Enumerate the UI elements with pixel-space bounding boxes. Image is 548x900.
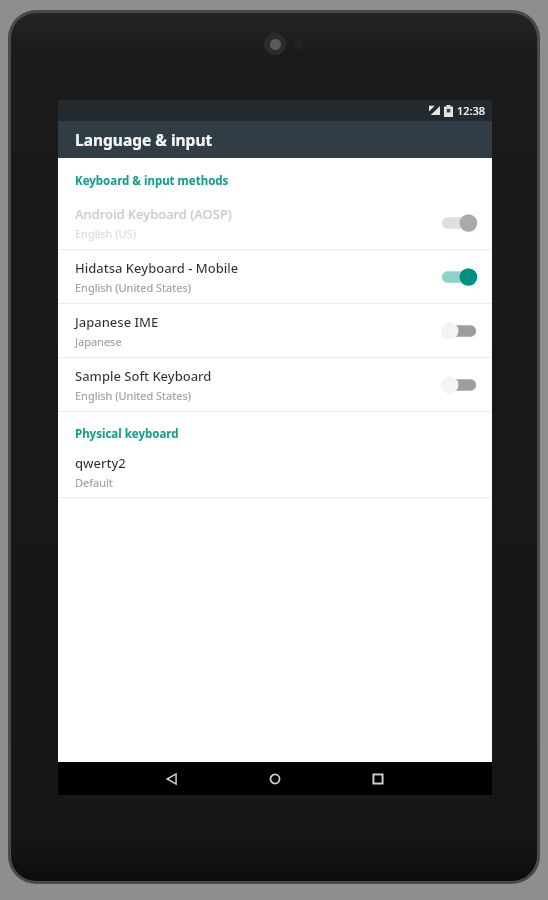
- button[interactable]: Disabled: [439, 372, 479, 398]
- staticText: Language & input: [75, 129, 213, 150]
- staticText: English (United States): [75, 280, 191, 295]
- staticText: English (United States): [75, 388, 191, 403]
- staticText: Sample Soft Keyboard: [75, 367, 212, 385]
- button[interactable]: Hidatsa Keyboard - Mobile: [58, 250, 492, 303]
- button[interactable]: Back: [147, 762, 197, 795]
- staticText: Hidatsa Keyboard - Mobile: [75, 259, 239, 277]
- button[interactable]: Japanese IME: [58, 304, 492, 357]
- button[interactable]: Disabled: [439, 210, 479, 236]
- staticText: Japanese IME: [75, 313, 159, 331]
- staticText: 12:38: [457, 103, 486, 118]
- button[interactable]: Home: [250, 762, 300, 795]
- staticText: Japanese: [75, 334, 122, 349]
- button[interactable]: qwerty2: [58, 449, 492, 497]
- staticText: Physical keyboard: [75, 426, 179, 442]
- button[interactable]: Sample Soft Keyboard: [58, 358, 492, 411]
- button[interactable]: Enabled: [439, 264, 479, 290]
- staticText: Keyboard & input methods: [75, 173, 229, 189]
- button[interactable]: Android Keyboard (AOSP): [58, 196, 492, 249]
- staticText: Android Keyboard (AOSP): [75, 205, 232, 223]
- button[interactable]: Recent apps: [353, 762, 403, 795]
- staticText: qwerty2: [75, 454, 126, 472]
- staticText: English (US): [75, 226, 136, 241]
- button[interactable]: Disabled: [439, 318, 479, 344]
- staticText: Default: [75, 475, 113, 490]
